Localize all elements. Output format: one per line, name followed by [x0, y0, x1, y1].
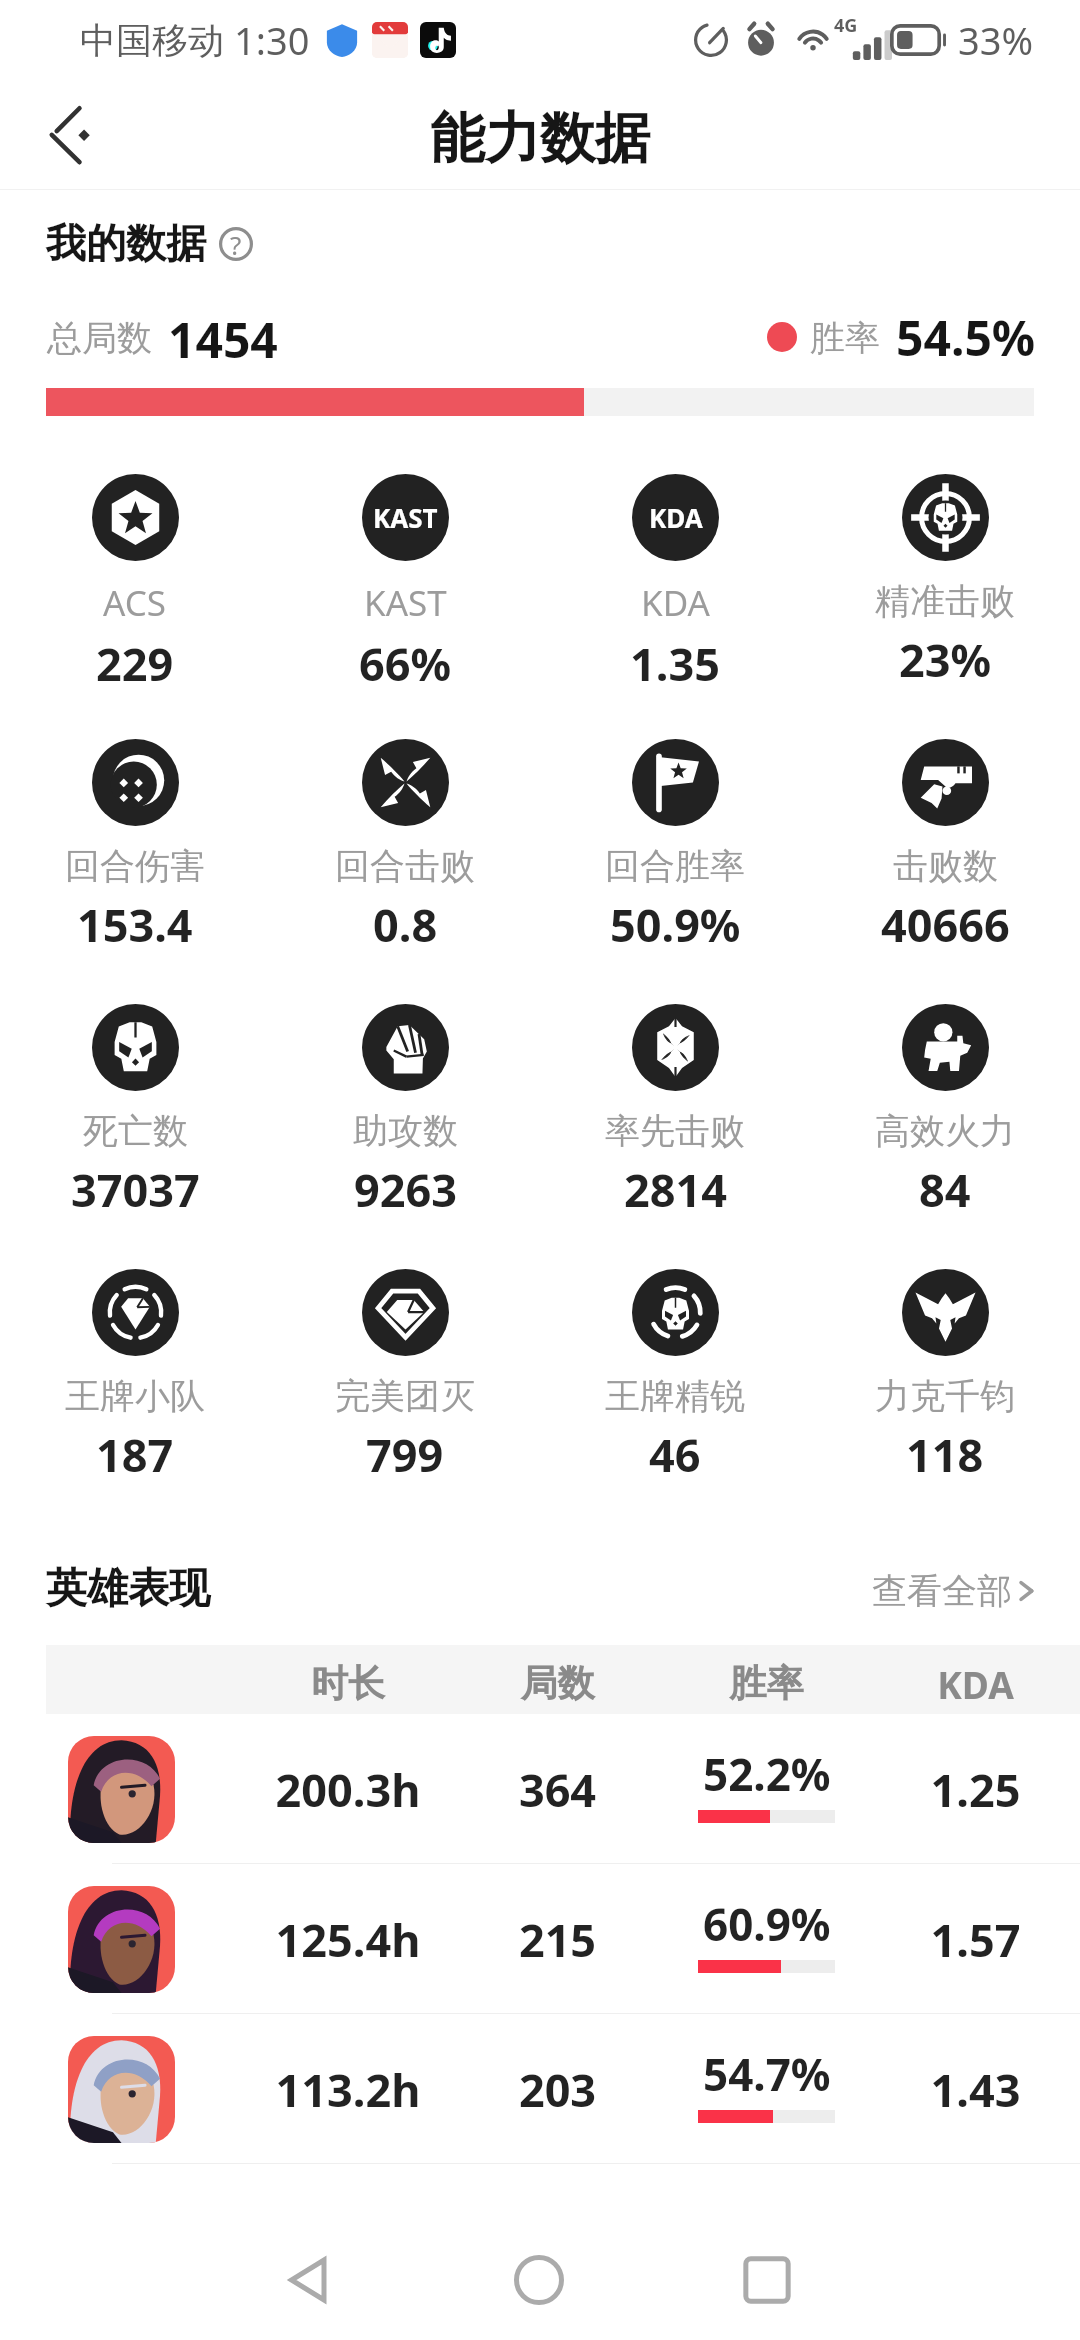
staticText: 60.9%: [703, 1894, 831, 1954]
staticText: 113.2h: [243, 2059, 453, 2120]
staticText: 英雄表现: [46, 1563, 210, 1615]
button[interactable]: 回合伤害: [0, 739, 270, 955]
staticText: 高效火力: [875, 1109, 1015, 1153]
staticText: 回合击败: [335, 844, 475, 888]
staticText: 4G: [834, 13, 858, 38]
staticText: 46: [649, 1424, 701, 1485]
staticText: ACS: [103, 579, 167, 627]
button[interactable]: 回合胜率: [540, 739, 810, 955]
button[interactable]: Back: [253, 2223, 367, 2337]
staticText: KAST: [373, 500, 438, 535]
staticText: 查看全部: [872, 1569, 1012, 1613]
staticText: 215: [453, 1909, 662, 1970]
staticText: 精准击败: [875, 579, 1015, 623]
button[interactable]: 200.3h: [0, 1714, 1080, 1864]
staticText: 局数: [453, 1660, 662, 1707]
staticText: 37037: [71, 1159, 200, 1220]
staticText: 中国移动: [80, 18, 224, 63]
button[interactable]: 力克千钧: [810, 1269, 1080, 1485]
staticText: 0.8: [373, 894, 438, 955]
staticText: 1.35: [630, 633, 720, 694]
button[interactable]: 击败数: [810, 739, 1080, 955]
staticText: KDA: [871, 1659, 1080, 1709]
staticText: 118: [906, 1424, 984, 1485]
button[interactable]: 高效火力: [810, 1004, 1080, 1220]
staticText: 229: [96, 633, 174, 694]
staticText: KAST: [364, 579, 447, 627]
staticText: 203: [453, 2059, 662, 2120]
button[interactable]: Recents: [710, 2223, 824, 2337]
button[interactable]: 率先击败: [540, 1004, 810, 1220]
staticText: 153.4: [77, 894, 193, 955]
staticText: KDA: [649, 500, 703, 535]
staticText: 王牌小队: [65, 1374, 205, 1418]
button[interactable]: Home: [482, 2223, 596, 2337]
staticText: 死亡数: [83, 1109, 188, 1153]
staticText: 50.9%: [610, 894, 741, 955]
button[interactable]: 回合击败: [270, 739, 540, 955]
staticText: 1.43: [871, 2059, 1080, 2120]
staticText: 助攻数: [353, 1109, 458, 1153]
staticText: 54.7%: [703, 2044, 831, 2104]
staticText: 23%: [899, 629, 992, 690]
button[interactable]: 精准击败: [810, 474, 1080, 690]
staticText: 33%: [958, 14, 1034, 66]
staticText: 52.2%: [703, 1744, 831, 1804]
staticText: 84: [919, 1159, 971, 1220]
staticText: 66%: [359, 633, 452, 694]
button[interactable]: Back: [24, 90, 116, 182]
staticText: 200.3h: [243, 1759, 453, 1820]
staticText: 40666: [881, 894, 1010, 955]
staticText: KDA: [641, 579, 710, 627]
staticText: 我的数据: [46, 218, 206, 268]
staticText: 时长: [243, 1660, 453, 1707]
staticText: 54.5%: [896, 305, 1036, 370]
staticText: 总局数: [47, 316, 152, 360]
button[interactable]: 助攻数: [270, 1004, 540, 1220]
button[interactable]: ACS: [0, 474, 270, 694]
button[interactable]: 113.2h: [0, 2014, 1080, 2164]
staticText: 率先击败: [605, 1109, 745, 1153]
staticText: 799: [366, 1424, 444, 1485]
button[interactable]: 王牌小队: [0, 1269, 270, 1485]
staticText: 回合胜率: [605, 844, 745, 888]
staticText: 1.57: [871, 1909, 1080, 1970]
button[interactable]: 查看全部: [872, 1569, 1042, 1613]
staticText: 1.25: [871, 1759, 1080, 1820]
staticText: 187: [96, 1424, 174, 1485]
staticText: 王牌精锐: [605, 1374, 745, 1418]
staticText: 9263: [354, 1159, 457, 1220]
button[interactable]: KDA: [540, 474, 810, 694]
staticText: 胜率: [810, 316, 880, 360]
staticText: 125.4h: [243, 1909, 453, 1970]
staticText: 回合伤害: [65, 844, 205, 888]
button[interactable]: 完美团灭: [270, 1269, 540, 1485]
staticText: 胜率: [662, 1660, 871, 1707]
staticText: 完美团灭: [335, 1374, 475, 1418]
staticText: 能力数据: [430, 104, 650, 173]
button[interactable]: 125.4h: [0, 1864, 1080, 2014]
staticText: ?: [230, 227, 242, 261]
button[interactable]: 王牌精锐: [540, 1269, 810, 1485]
staticText: 364: [453, 1759, 662, 1820]
button[interactable]: 死亡数: [0, 1004, 270, 1220]
staticText: 1454: [168, 307, 278, 372]
staticText: 2814: [624, 1159, 727, 1220]
button[interactable]: KAST: [270, 474, 540, 694]
staticText: 1:30: [234, 14, 310, 66]
staticText: 击败数: [893, 844, 998, 888]
staticText: 力克千钧: [875, 1374, 1015, 1418]
